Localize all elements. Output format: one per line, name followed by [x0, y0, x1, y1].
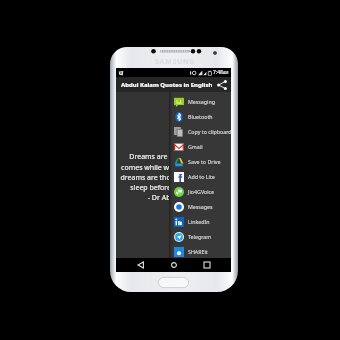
- staticText: 7:48: [213, 69, 223, 76]
- staticText: Save to Drive: [188, 158, 231, 165]
- button[interactable]: Recent apps: [199, 258, 215, 272]
- button[interactable]: Copy to clipboard: [169, 124, 231, 139]
- staticText: Messages: [188, 203, 231, 210]
- staticText: SHAREit: [188, 248, 231, 255]
- button[interactable]: Bluetooth: [169, 109, 231, 124]
- button[interactable]: Add to Lite: [169, 169, 231, 184]
- staticText: LinkedIn: [188, 218, 231, 225]
- button[interactable]: Abdul Kalam Quotes in English: [116, 77, 231, 92]
- staticText: Bluetooth: [188, 113, 231, 120]
- button[interactable]: Telegram: [169, 229, 231, 244]
- button[interactable]: Jio4GVoice: [169, 184, 231, 199]
- staticText: SAMSUNG: [155, 57, 196, 67]
- button[interactable]: Share: [214, 77, 229, 92]
- button[interactable]: Back: [133, 258, 149, 272]
- staticText: Gmail: [188, 143, 231, 150]
- button[interactable]: Home: [166, 258, 182, 272]
- staticText: Jio4GVoice: [188, 188, 231, 195]
- staticText: Copy to clipboard: [188, 128, 231, 135]
- staticText: Abdul Kalam Quotes in English: [121, 81, 214, 89]
- button[interactable]: LinkedIn: [169, 214, 231, 229]
- staticText: AM: [223, 70, 229, 75]
- staticText: Add to Lite: [188, 173, 231, 180]
- button[interactable]: Messaging: [169, 94, 231, 109]
- button[interactable]: Save to Drive: [169, 154, 231, 169]
- button[interactable]: SHAREit: [169, 244, 231, 259]
- staticText: Telegram: [188, 233, 231, 240]
- button[interactable]: Messages: [169, 199, 231, 214]
- staticText: Messaging: [188, 98, 231, 105]
- staticText: Dreams are not those which comes while w…: [120, 152, 231, 202]
- button[interactable]: Gmail: [169, 139, 231, 154]
